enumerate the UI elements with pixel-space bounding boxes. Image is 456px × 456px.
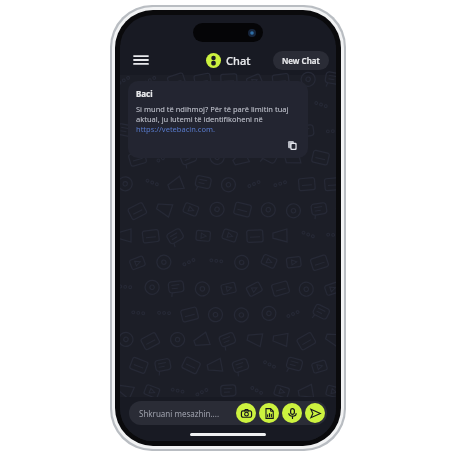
staticText: Si mund të ndihmoj? Për të parë limitin … xyxy=(136,104,289,114)
staticText: New Chat xyxy=(282,55,320,66)
button[interactable]: Voice message xyxy=(282,403,302,423)
button[interactable]: Attach document xyxy=(259,403,279,423)
button[interactable]: Camera xyxy=(236,403,256,423)
button[interactable]: Menu xyxy=(128,47,154,73)
button[interactable]: Shkruani mesazhin.... xyxy=(129,401,236,425)
button[interactable]: Baci xyxy=(128,81,308,158)
staticText: Shkruani mesazhin.... xyxy=(139,408,220,419)
button[interactable]: Copy xyxy=(284,137,300,153)
button[interactable]: New Chat xyxy=(273,51,329,70)
button[interactable]: Send xyxy=(305,403,325,423)
button[interactable]: Chat xyxy=(206,53,251,68)
staticText: Baci xyxy=(136,88,153,99)
staticText: https://vetebacin.com. xyxy=(136,124,215,134)
staticText: aktual, ju lutemi të identifikoheni në xyxy=(136,114,263,124)
staticText: Chat xyxy=(226,53,251,68)
